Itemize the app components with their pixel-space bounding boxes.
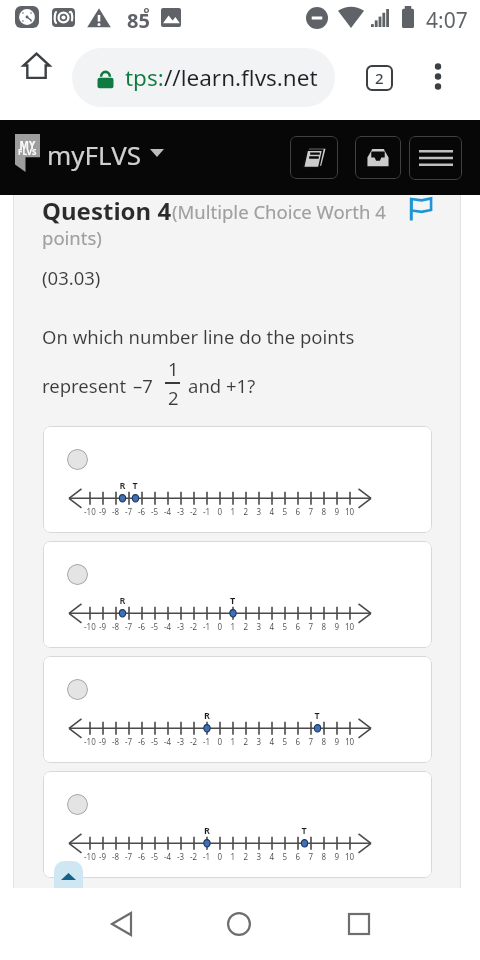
staticText: 2 — [168, 385, 179, 410]
staticText: 85 — [127, 7, 150, 34]
button[interactable]: Home — [16, 45, 57, 86]
staticText: myFLVS — [47, 137, 142, 172]
button[interactable]: Recent apps — [334, 899, 384, 949]
staticText: (03.03) — [42, 265, 101, 290]
staticText: –7 — [133, 373, 153, 398]
button[interactable] — [43, 771, 432, 878]
staticText: represent — [42, 373, 132, 398]
button[interactable] — [43, 541, 432, 648]
staticText: tps: — [125, 62, 164, 93]
staticText: points) — [42, 225, 102, 250]
staticText: Question 4 — [42, 194, 172, 227]
button[interactable]: Scroll to top — [54, 861, 83, 901]
button[interactable]: tps: — [72, 48, 335, 107]
staticText: 4:07 — [426, 6, 468, 35]
staticText: and +1? — [188, 373, 256, 398]
button[interactable]: Home — [214, 899, 264, 949]
button[interactable]: myFLVS — [14, 133, 166, 180]
staticText: On which number line do the points — [42, 324, 355, 349]
button[interactable]: Courses — [290, 136, 338, 179]
staticText: (Multiple Choice Worth 4 — [172, 199, 386, 224]
button[interactable] — [43, 656, 432, 763]
button[interactable]: Back — [96, 899, 146, 949]
button[interactable] — [43, 426, 432, 533]
button[interactable]: Inbox — [355, 136, 401, 179]
staticText: 1 — [168, 356, 179, 381]
staticText: 2 — [375, 68, 384, 88]
button[interactable]: More options — [420, 58, 456, 94]
button[interactable]: Tabs — [366, 65, 393, 91]
button[interactable]: Flag question — [404, 194, 436, 224]
staticText: //learn.flvs.net — [164, 62, 318, 93]
button[interactable]: Menu — [409, 136, 462, 180]
